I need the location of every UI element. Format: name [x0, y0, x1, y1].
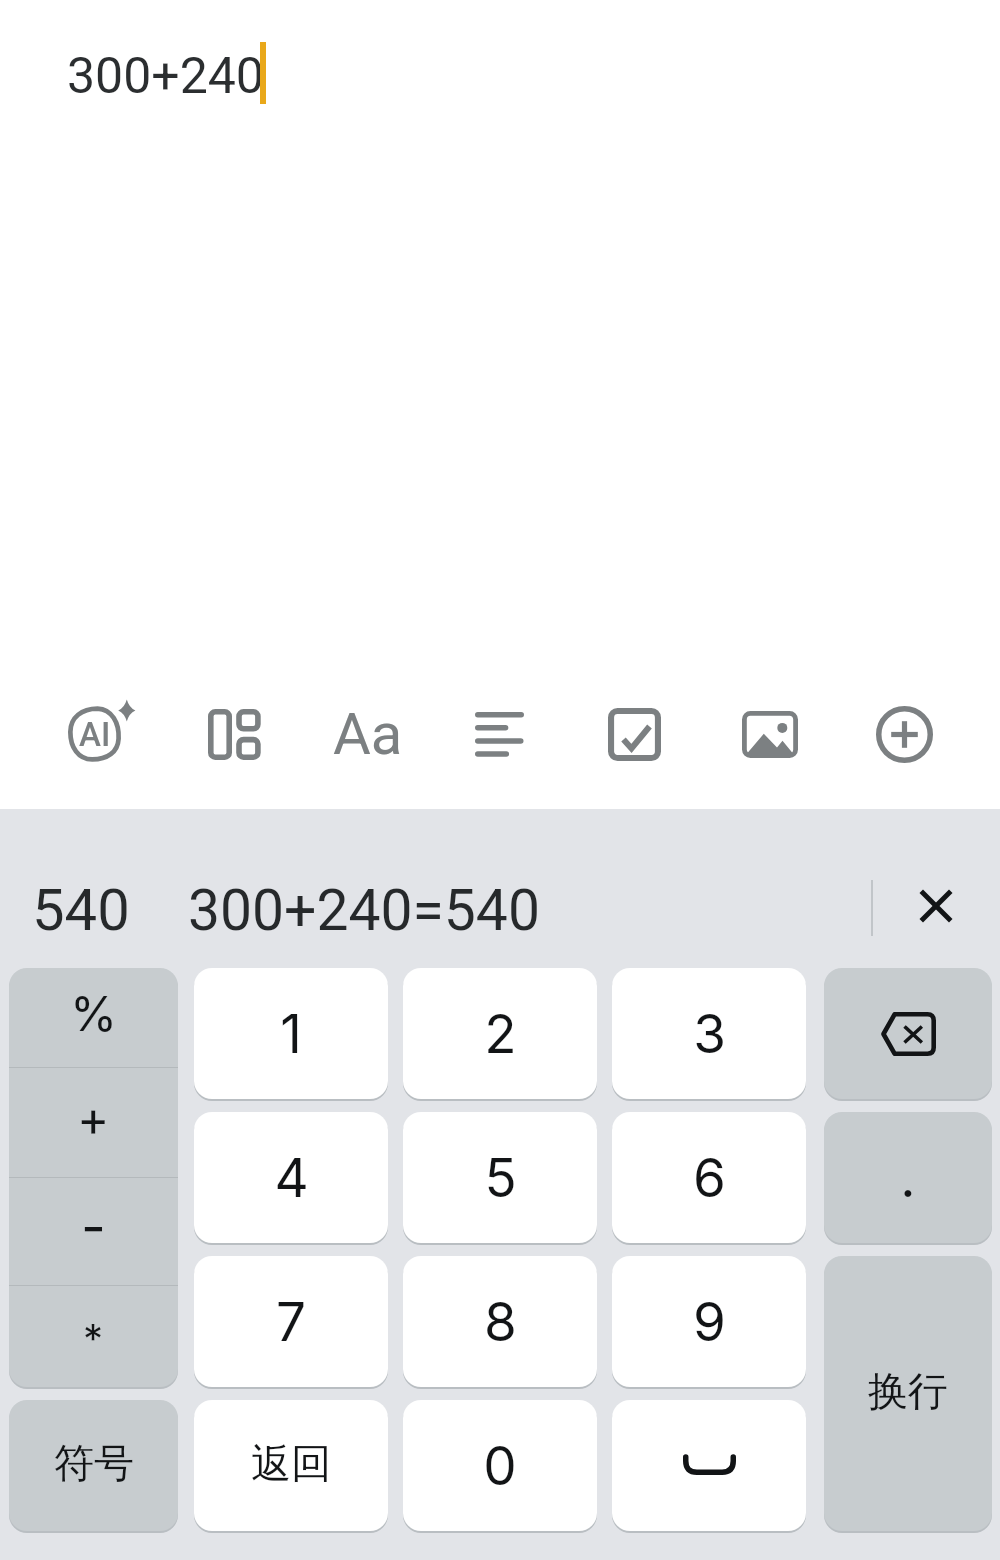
staticText: 5	[484, 1146, 517, 1210]
button[interactable]	[612, 1400, 806, 1531]
staticText: 2	[484, 1002, 517, 1066]
staticText: -	[81, 1194, 106, 1259]
staticText: 9	[693, 1290, 726, 1354]
button[interactable]: %	[9, 968, 178, 1067]
button[interactable]: AI assistant	[28, 678, 162, 790]
button[interactable]: %	[9, 968, 178, 1387]
staticText: 换行	[868, 1366, 948, 1416]
button[interactable]: 0	[403, 1400, 597, 1531]
button[interactable]: 返回	[194, 1400, 388, 1531]
button[interactable]: Layout	[162, 678, 297, 790]
button[interactable]: .	[824, 1112, 992, 1243]
staticText: 3	[693, 1002, 726, 1066]
button[interactable]: Backspace	[824, 968, 992, 1099]
staticText: 6	[693, 1146, 726, 1210]
staticText: *	[83, 1314, 104, 1362]
staticText: 4	[274, 1146, 309, 1210]
staticText: 符号	[54, 1438, 134, 1488]
button[interactable]: 6	[612, 1112, 806, 1243]
staticText: 0	[483, 1434, 517, 1498]
button[interactable]: 300+240=540	[188, 877, 540, 944]
button[interactable]: Insert image	[702, 678, 837, 790]
button[interactable]: 2	[403, 968, 597, 1099]
button[interactable]: 5	[403, 1112, 597, 1243]
button[interactable]: -	[9, 1178, 178, 1285]
staticText: +	[77, 1089, 110, 1148]
button[interactable]: Checklist	[567, 678, 702, 790]
staticText: AI	[79, 715, 111, 754]
button[interactable]: Close keyboard	[881, 866, 991, 954]
staticText: .	[900, 1146, 916, 1210]
button[interactable]: 换行	[824, 1256, 992, 1531]
button[interactable]: *	[9, 1286, 178, 1387]
button[interactable]: 1	[194, 968, 388, 1099]
staticText: 返回	[251, 1438, 331, 1488]
button[interactable]: 540	[32, 876, 130, 944]
button[interactable]: 4	[194, 1112, 388, 1243]
button[interactable]: 8	[403, 1256, 597, 1387]
button[interactable]: 9	[612, 1256, 806, 1387]
button[interactable]: +	[9, 1068, 178, 1177]
button[interactable]: 3	[612, 968, 806, 1099]
button[interactable]: Align text	[432, 678, 567, 790]
staticText: 8	[484, 1290, 517, 1354]
button[interactable]: 7	[194, 1256, 388, 1387]
button[interactable]: 符号	[9, 1400, 178, 1531]
staticText: Aa	[333, 700, 403, 768]
staticText: 1	[280, 1002, 302, 1066]
staticText: 300+240	[67, 47, 264, 106]
staticText: %	[70, 984, 118, 1042]
button[interactable]: Add	[837, 678, 972, 790]
button[interactable]: Text style	[297, 678, 432, 790]
staticText: 7	[276, 1290, 306, 1354]
